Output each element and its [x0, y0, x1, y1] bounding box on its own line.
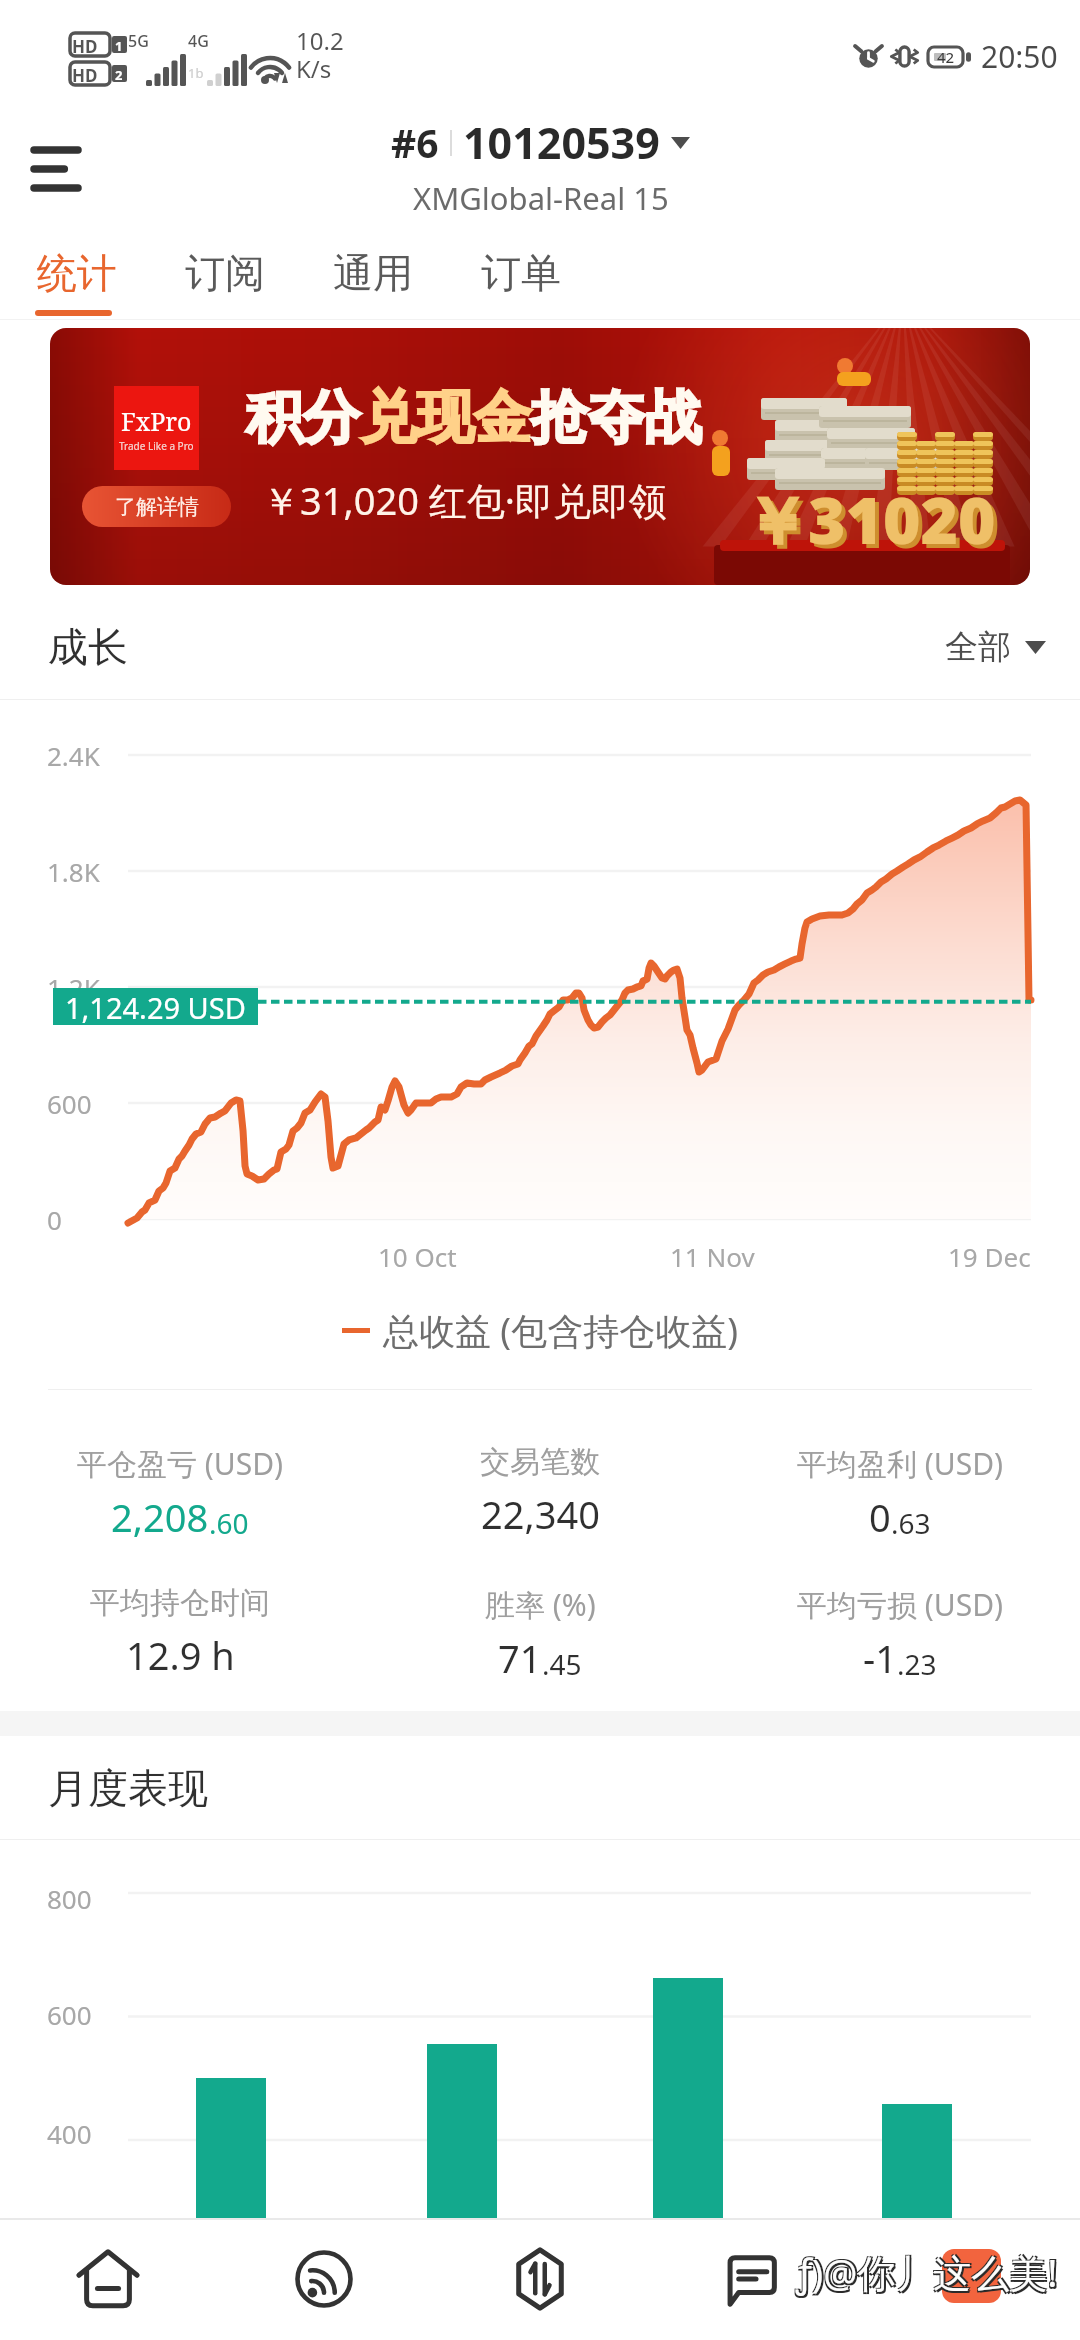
staticText: 400	[47, 2116, 92, 2151]
button[interactable]: Home	[0, 2218, 216, 2340]
staticText: 总收益 (包含持仓收益)	[383, 1306, 738, 1355]
staticText: 19 Dec	[948, 1239, 1031, 1274]
staticText: 统计	[37, 248, 117, 298]
staticText: 42	[937, 47, 955, 67]
staticText: 兑现金	[360, 382, 531, 454]
staticText: 积分	[246, 382, 360, 454]
staticText: .23	[897, 1645, 937, 1683]
staticText: 71	[498, 1632, 542, 1684]
button[interactable]: FxPro	[50, 328, 1030, 585]
staticText: 600	[47, 1997, 92, 2032]
staticText: ƒ)@你丿这么美!	[795, 2245, 1057, 2297]
staticText: 平仓盈亏 (USD)	[77, 1443, 284, 1484]
staticText: 5G	[128, 30, 149, 52]
staticText: ƒ)@你丿这么美!	[795, 2248, 1057, 2300]
staticText: 1	[115, 37, 123, 55]
staticText: HD	[72, 35, 98, 58]
staticText: 2.4K	[47, 738, 100, 773]
staticText: 通用	[333, 248, 413, 298]
staticText: 11 Nov	[670, 1239, 755, 1274]
staticText: 0	[869, 1491, 891, 1543]
button[interactable]: 订阅	[151, 228, 299, 320]
button[interactable]: Chat	[648, 2218, 864, 2340]
button[interactable]: 了解详情	[82, 486, 231, 527]
staticText: #6	[391, 116, 439, 169]
staticText: 交易笔数	[480, 1443, 600, 1481]
staticText: 600	[47, 1086, 92, 1121]
staticText: 抢夺战	[531, 382, 702, 454]
staticText: 平均亏损 (USD)	[797, 1584, 1004, 1625]
button[interactable]: 通用	[299, 228, 447, 320]
staticText: 了解详情	[115, 494, 199, 520]
staticText: ƒ)@你丿这么美!	[798, 2248, 1060, 2300]
staticText: HD	[72, 64, 98, 87]
staticText: 胜率 (%)	[485, 1584, 596, 1625]
button[interactable]: 订单	[447, 228, 595, 320]
staticText: ￥31020	[744, 476, 996, 563]
staticText: .45	[542, 1645, 582, 1683]
button[interactable]: Menu	[20, 133, 92, 205]
staticText: 10120539	[463, 113, 660, 172]
staticText: 全部	[945, 626, 1011, 668]
staticText: 20:50	[981, 36, 1058, 77]
staticText: -1	[863, 1632, 897, 1684]
staticText: 800	[47, 1881, 92, 1916]
staticText: 1.8K	[47, 854, 100, 889]
staticText: ￥31020	[748, 480, 1000, 567]
staticText: .63	[891, 1504, 931, 1542]
staticText: 2	[115, 66, 123, 84]
staticText: 1,124.29 USD	[65, 988, 246, 1025]
staticText: 订单	[481, 248, 561, 298]
staticText: 1.2K	[47, 970, 100, 1005]
staticText: Trade Like a Pro	[119, 439, 194, 453]
staticText: ￥31,020 红包·即兑即领	[262, 474, 667, 526]
staticText: FxPro	[121, 404, 192, 438]
staticText: 10.2 K/s	[296, 24, 344, 85]
staticText: 订阅	[185, 248, 265, 298]
staticText: XMGlobal-Real 15	[413, 177, 669, 219]
staticText: 22,340	[481, 1488, 600, 1540]
staticText: 10 Oct	[378, 1239, 457, 1274]
staticText: 成长	[48, 622, 128, 672]
staticText: 2,208	[111, 1491, 209, 1543]
staticText: 月度表现	[48, 1763, 208, 1813]
button[interactable]: Signals	[216, 2218, 432, 2340]
staticText: 1b	[188, 64, 204, 82]
button[interactable]: 统计	[3, 228, 151, 320]
button[interactable]: 全部	[945, 626, 1046, 668]
staticText: ƒ)@你丿这么美!	[796, 2246, 1058, 2298]
staticText: 12.9 h	[126, 1629, 235, 1681]
staticText: .60	[209, 1504, 249, 1542]
staticText: ƒ)@你丿这么美!	[798, 2245, 1060, 2297]
staticText: 4G	[188, 30, 209, 52]
staticText: 0	[47, 1202, 62, 1237]
button[interactable]: Trade	[432, 2218, 648, 2340]
staticText: 平均持仓时间	[90, 1584, 270, 1622]
staticText: 平均盈利 (USD)	[797, 1443, 1004, 1484]
